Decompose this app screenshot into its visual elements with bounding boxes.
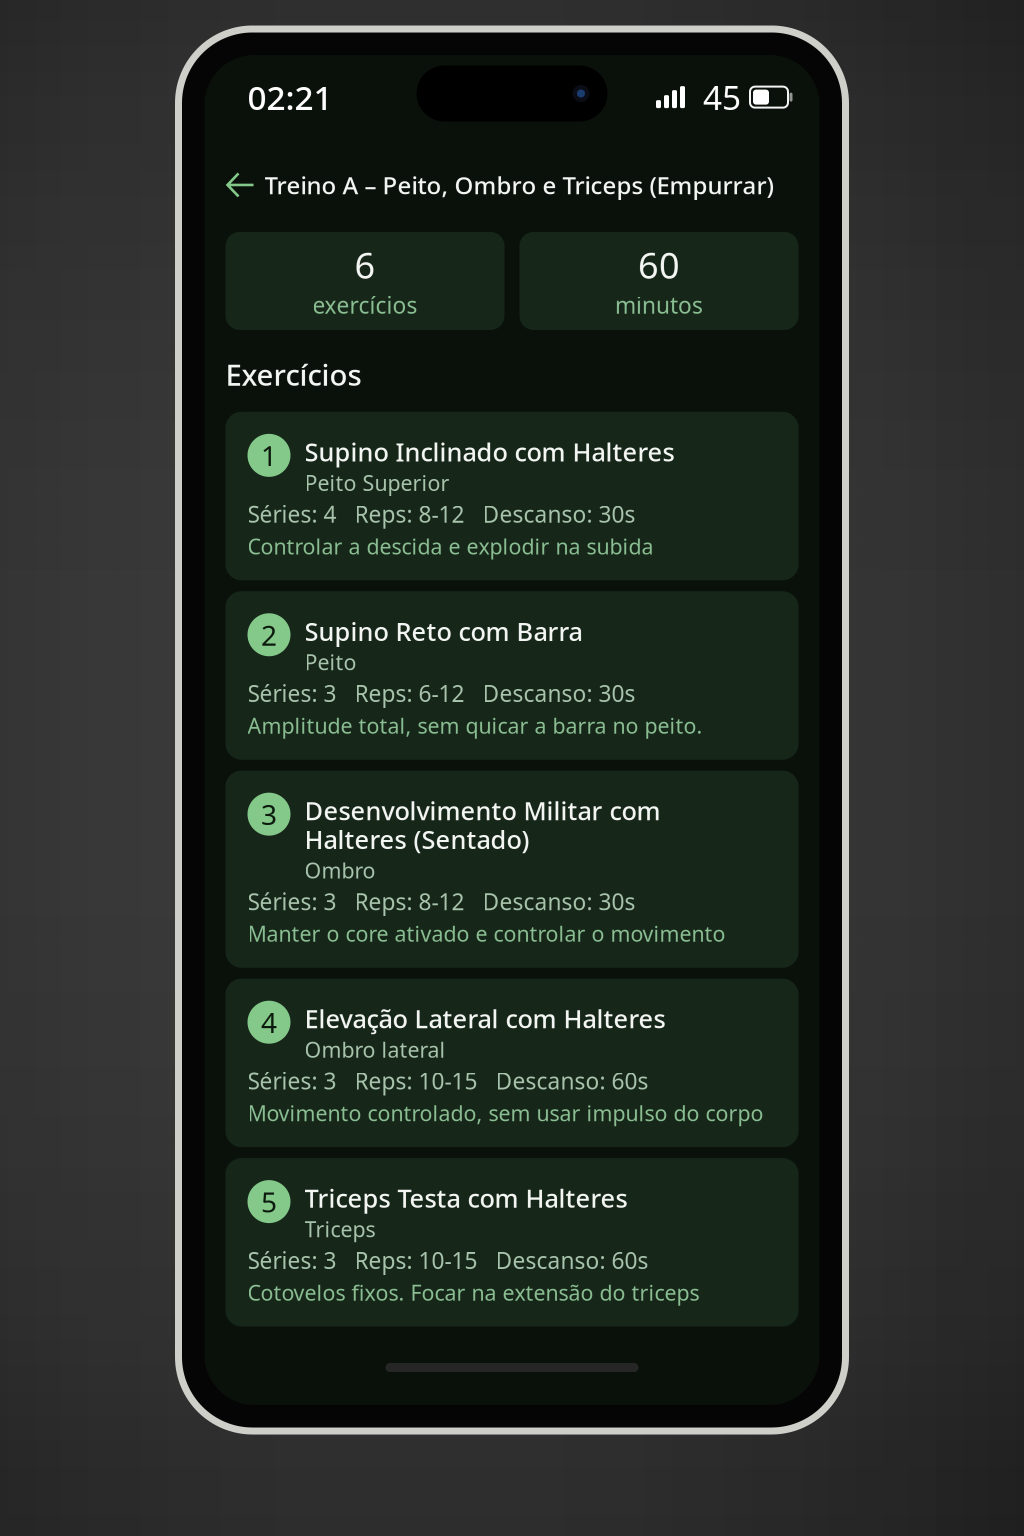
button[interactable]: 2 bbox=[225, 591, 798, 760]
staticText: Supino Inclinado com Halteres bbox=[304, 435, 674, 468]
button[interactable]: Back bbox=[225, 171, 255, 198]
staticText: Ombro lateral bbox=[304, 1035, 445, 1064]
staticText: Triceps bbox=[304, 1215, 375, 1243]
button[interactable]: 1 bbox=[225, 412, 798, 580]
staticText: Elevação Lateral com Halteres bbox=[304, 1002, 665, 1035]
staticText: Descanso: 60s bbox=[495, 1066, 648, 1096]
button[interactable]: 4 bbox=[225, 979, 798, 1147]
staticText: Triceps Testa com Halteres bbox=[304, 1181, 627, 1215]
staticText: 5 bbox=[261, 1183, 277, 1220]
staticText: minutos bbox=[615, 290, 703, 320]
staticText: 3 bbox=[261, 796, 277, 833]
staticText: Ombro bbox=[304, 856, 375, 884]
staticText: 6 bbox=[354, 241, 375, 289]
staticText: Reps: 10-15 bbox=[354, 1066, 477, 1096]
staticText: Movimento controlado, sem usar impulso d… bbox=[247, 1099, 763, 1127]
staticText: 1 bbox=[261, 437, 277, 474]
staticText: Reps: 8-12 bbox=[354, 499, 464, 529]
button[interactable]: 5 bbox=[225, 1158, 798, 1326]
staticText: Descanso: 30s bbox=[482, 678, 635, 708]
staticText: Séries: 3 bbox=[247, 886, 336, 916]
staticText: Reps: 10-15 bbox=[354, 1245, 477, 1275]
staticText: Séries: 3 bbox=[247, 678, 336, 708]
staticText: Descanso: 30s bbox=[482, 499, 635, 529]
staticText: Séries: 3 bbox=[247, 1066, 336, 1096]
staticText: 45 bbox=[685, 75, 750, 119]
button[interactable]: 3 bbox=[225, 771, 798, 968]
staticText: Reps: 8-12 bbox=[354, 886, 464, 916]
staticText: 02:21 bbox=[247, 75, 332, 119]
staticText: Desenvolvimento Militar com Halteres (Se… bbox=[304, 794, 660, 856]
staticText: Peito bbox=[304, 648, 356, 676]
staticText: 60 bbox=[638, 241, 680, 289]
staticText: Descanso: 30s bbox=[482, 886, 635, 916]
staticText: Reps: 6-12 bbox=[354, 678, 464, 708]
staticText: Peito Superior bbox=[304, 468, 449, 497]
staticText: Descanso: 60s bbox=[495, 1245, 648, 1275]
staticText: Treino A – Peito, Ombro e Triceps (Empur… bbox=[264, 169, 773, 201]
staticText: Manter o core ativado e controlar o movi… bbox=[247, 919, 725, 948]
staticText: Supino Reto com Barra bbox=[304, 614, 582, 648]
staticText: Cotovelos fixos. Focar na extensão do tr… bbox=[247, 1278, 699, 1306]
staticText: exercícios bbox=[312, 290, 417, 320]
staticText: Amplitude total, sem quicar a barra no p… bbox=[247, 711, 702, 740]
staticText: Séries: 4 bbox=[247, 499, 336, 529]
staticText: 4 bbox=[261, 1004, 277, 1041]
staticText: 2 bbox=[261, 616, 277, 653]
staticText: Exercícios bbox=[225, 355, 361, 394]
staticText: Controlar a descida e explodir na subida bbox=[247, 532, 653, 560]
staticText: Séries: 3 bbox=[247, 1245, 336, 1275]
